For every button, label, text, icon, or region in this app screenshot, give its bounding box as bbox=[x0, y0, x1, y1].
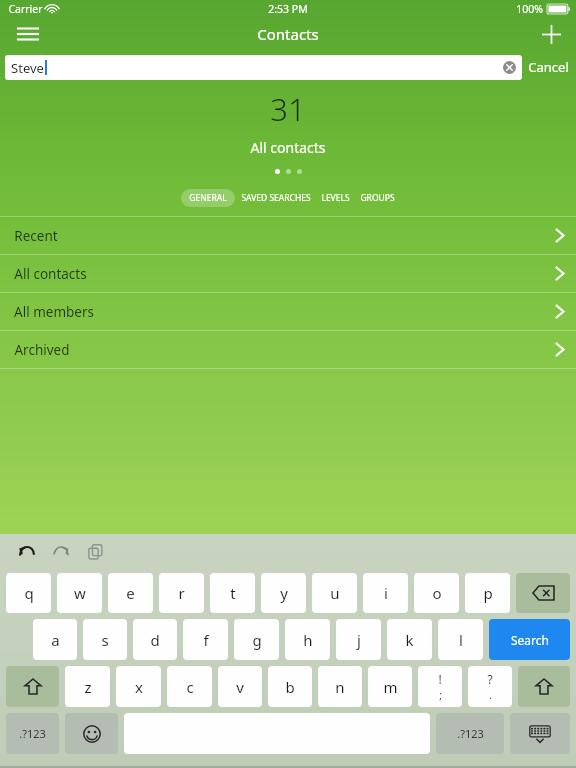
staticText: Contacts bbox=[257, 24, 319, 44]
button[interactable]: Emoji bbox=[65, 713, 118, 754]
button[interactable]: Add contact bbox=[526, 18, 576, 50]
button[interactable]: u bbox=[312, 573, 357, 613]
button[interactable]: f bbox=[183, 619, 228, 660]
staticText: p bbox=[483, 583, 493, 603]
button[interactable]: Archived bbox=[0, 331, 576, 368]
button[interactable]: v bbox=[218, 666, 262, 707]
button[interactable]: m bbox=[368, 666, 412, 707]
button[interactable]: n bbox=[318, 666, 362, 707]
button[interactable]: All contacts bbox=[0, 255, 576, 292]
staticText: Steve bbox=[11, 59, 44, 77]
button[interactable]: s bbox=[83, 619, 127, 660]
button[interactable]: GROUPS bbox=[360, 189, 395, 207]
staticText: g bbox=[252, 630, 262, 650]
button[interactable]: Steve bbox=[5, 55, 522, 80]
staticText: ? bbox=[487, 671, 493, 687]
staticText: y bbox=[280, 583, 288, 603]
button[interactable]: SAVED SEARCHES bbox=[241, 189, 311, 207]
staticText: 31 bbox=[270, 88, 306, 130]
button[interactable]: i bbox=[363, 573, 408, 613]
button[interactable]: .?123 bbox=[6, 713, 59, 754]
button[interactable]: b bbox=[268, 666, 312, 707]
button[interactable]: o bbox=[414, 573, 459, 613]
button[interactable]: r bbox=[159, 573, 204, 613]
staticText: All contacts bbox=[14, 265, 87, 283]
staticText: h bbox=[303, 630, 313, 650]
staticText: k bbox=[405, 630, 414, 650]
staticText: v bbox=[236, 677, 244, 697]
staticText: q bbox=[24, 583, 34, 603]
staticText: f bbox=[203, 630, 209, 650]
staticText: l bbox=[459, 630, 463, 650]
button[interactable]: Cancel bbox=[528, 58, 569, 76]
button[interactable]: ? bbox=[468, 666, 512, 707]
staticText: All contacts bbox=[250, 138, 326, 157]
staticText: z bbox=[84, 677, 92, 697]
staticText: . bbox=[489, 688, 492, 702]
staticText: ! bbox=[438, 671, 442, 687]
staticText: x bbox=[135, 677, 143, 697]
button[interactable]: .?123 bbox=[436, 713, 504, 754]
button[interactable]: w bbox=[57, 573, 102, 613]
button[interactable]: h bbox=[285, 619, 330, 660]
staticText: LEVELS bbox=[321, 192, 350, 204]
staticText: c bbox=[186, 677, 194, 697]
button[interactable]: Menu bbox=[0, 18, 56, 50]
button[interactable]: Recent bbox=[0, 217, 576, 254]
button[interactable]: Shift bbox=[518, 666, 570, 707]
staticText: e bbox=[126, 583, 135, 603]
button[interactable]: a bbox=[33, 619, 77, 660]
staticText: 2:53 PM bbox=[268, 2, 308, 16]
button[interactable]: Hide keyboard bbox=[510, 713, 570, 754]
staticText: .?123 bbox=[19, 726, 46, 741]
staticText: Cancel bbox=[528, 58, 569, 76]
staticText: Archived bbox=[14, 341, 70, 359]
button[interactable]: t bbox=[210, 573, 255, 613]
button[interactable]: d bbox=[133, 619, 177, 660]
staticText: s bbox=[101, 630, 109, 650]
button[interactable]: c bbox=[167, 666, 212, 707]
button[interactable]: ! bbox=[418, 666, 462, 707]
staticText: j bbox=[357, 630, 361, 650]
staticText: Recent bbox=[14, 227, 58, 245]
button[interactable]: Paste bbox=[78, 535, 112, 569]
button[interactable]: LEVELS bbox=[321, 189, 350, 207]
button[interactable]: q bbox=[6, 573, 51, 613]
button[interactable]: l bbox=[438, 619, 483, 660]
staticText: m bbox=[383, 677, 398, 697]
staticText: b bbox=[285, 677, 295, 697]
staticText: t bbox=[230, 583, 236, 603]
staticText: i bbox=[384, 583, 388, 603]
staticText: Search bbox=[511, 632, 549, 648]
staticText: Carrier bbox=[8, 2, 43, 16]
button[interactable]: j bbox=[336, 619, 381, 660]
button[interactable]: g bbox=[234, 619, 279, 660]
button[interactable]: y bbox=[261, 573, 306, 613]
button[interactable]: GENERAL bbox=[181, 189, 235, 207]
staticText: .?123 bbox=[457, 726, 484, 741]
button[interactable]: Shift bbox=[6, 666, 59, 707]
button[interactable]: z bbox=[65, 666, 110, 707]
staticText: r bbox=[178, 583, 185, 603]
staticText: u bbox=[330, 583, 340, 603]
staticText: d bbox=[150, 630, 160, 650]
staticText: o bbox=[432, 583, 442, 603]
button[interactable]: Redo bbox=[44, 535, 78, 569]
staticText: n bbox=[335, 677, 345, 697]
staticText: GROUPS bbox=[360, 192, 395, 204]
staticText: SAVED SEARCHES bbox=[241, 192, 311, 204]
button[interactable]: Search bbox=[489, 619, 570, 660]
button[interactable]: x bbox=[116, 666, 161, 707]
staticText: GENERAL bbox=[189, 192, 227, 204]
button[interactable]: Backspace bbox=[516, 573, 570, 613]
staticText: All members bbox=[14, 303, 94, 321]
button[interactable]: Undo bbox=[10, 535, 44, 569]
staticText: w bbox=[74, 583, 86, 603]
staticText: 100% bbox=[516, 2, 543, 16]
staticText: a bbox=[51, 630, 60, 650]
button[interactable]: k bbox=[387, 619, 432, 660]
button[interactable]: p bbox=[465, 573, 510, 613]
button[interactable]: e bbox=[108, 573, 153, 613]
button[interactable]: All members bbox=[0, 293, 576, 330]
